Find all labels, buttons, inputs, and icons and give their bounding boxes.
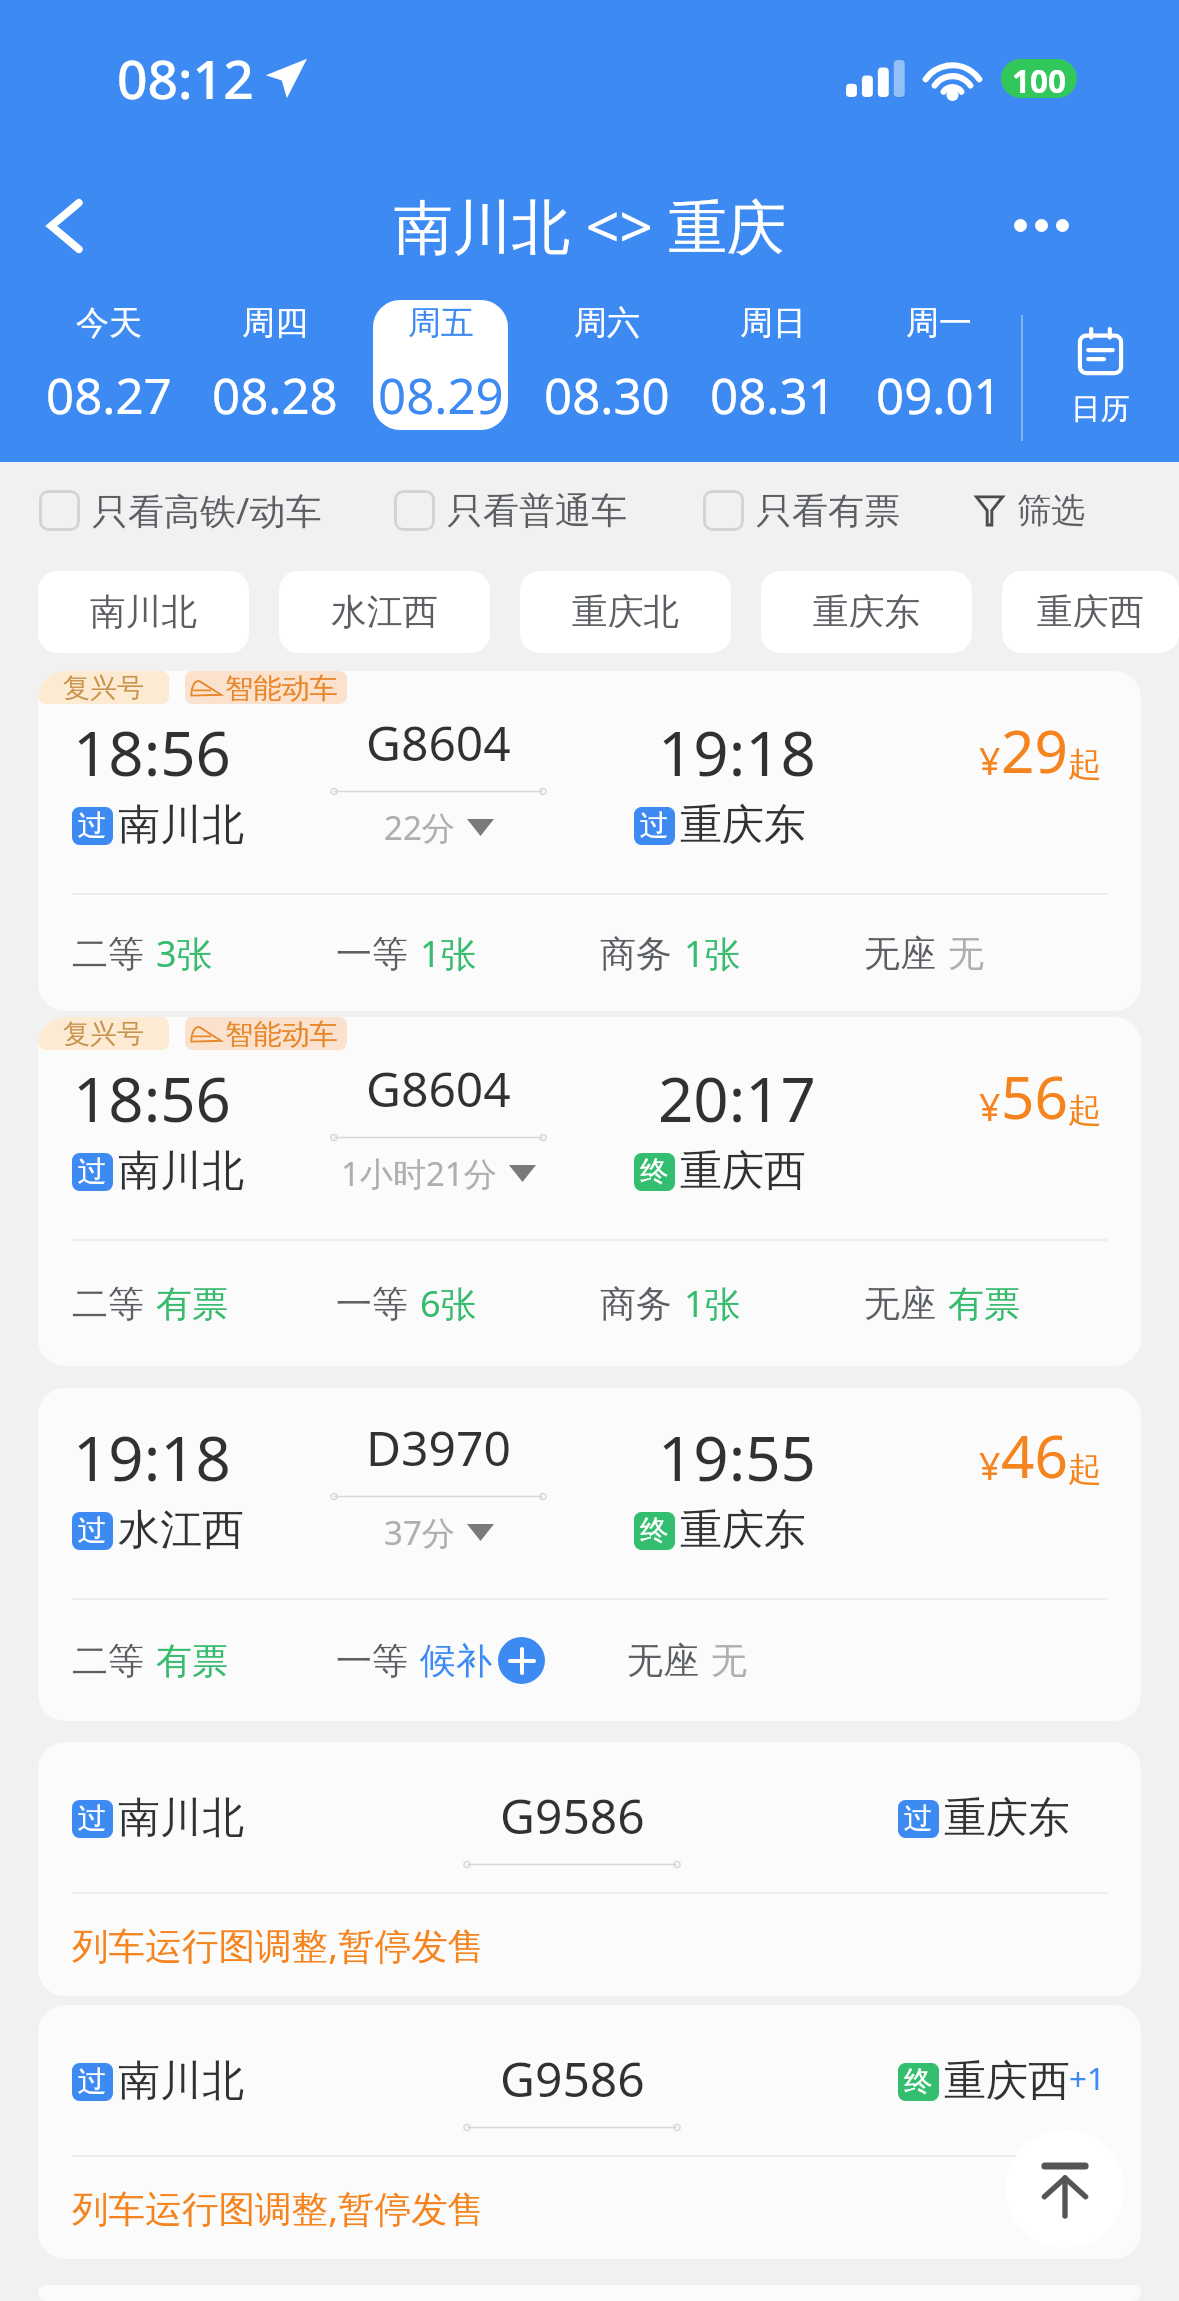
staticText: 复兴号 bbox=[63, 1017, 144, 1050]
staticText: 过 bbox=[78, 2064, 107, 2100]
staticText: 过 bbox=[904, 1801, 933, 1837]
staticText: 无 bbox=[948, 931, 984, 976]
staticText: 无座 bbox=[864, 1281, 936, 1326]
button[interactable]: 周五 bbox=[373, 300, 508, 430]
staticText: 周六 bbox=[574, 302, 640, 344]
button[interactable]: 周六 bbox=[539, 300, 674, 430]
staticText: 无座 bbox=[864, 931, 936, 976]
button[interactable]: 过 bbox=[38, 1742, 1141, 1996]
button[interactable]: 周一 bbox=[871, 300, 1006, 430]
staticText: 南川北 bbox=[118, 799, 244, 852]
staticText: 智能动车 bbox=[225, 1017, 338, 1050]
staticText: 列车运行图调整,暂停发售 bbox=[72, 1920, 485, 1970]
staticText: 08.29 bbox=[378, 361, 504, 428]
staticText: 6张 bbox=[420, 1279, 477, 1328]
staticText: 无 bbox=[711, 1638, 747, 1683]
staticText: ¥ bbox=[979, 1440, 1001, 1491]
button[interactable]: More options bbox=[981, 165, 1101, 285]
staticText: 1张 bbox=[684, 929, 741, 978]
button[interactable]: 南川北 bbox=[38, 571, 249, 653]
button[interactable]: 重庆东 bbox=[761, 571, 972, 653]
staticText: 南川北 bbox=[90, 590, 198, 635]
staticText: 18:56 bbox=[73, 1056, 231, 1140]
button[interactable]: Calendar bbox=[1021, 294, 1179, 462]
staticText: 二等 bbox=[72, 1281, 144, 1326]
staticText: 19:18 bbox=[73, 1415, 231, 1499]
staticText: 08.27 bbox=[46, 361, 172, 428]
staticText: 18:56 bbox=[73, 710, 231, 794]
staticText: 重庆东 bbox=[680, 799, 806, 852]
staticText: 1张 bbox=[420, 929, 477, 978]
staticText: 重庆北 bbox=[572, 590, 680, 635]
staticText: ¥ bbox=[979, 1081, 1001, 1132]
button[interactable]: 只看普通车 bbox=[394, 488, 627, 533]
staticText: 重庆东 bbox=[813, 590, 921, 635]
button[interactable]: 周日 bbox=[705, 300, 840, 430]
button[interactable]: 水江西 bbox=[279, 571, 490, 653]
staticText: 重庆西 bbox=[680, 1145, 806, 1198]
staticText: 重庆东 bbox=[944, 1792, 1070, 1845]
staticText: 19:55 bbox=[658, 1415, 816, 1499]
staticText: 二等 bbox=[72, 931, 144, 976]
staticText: G9586 bbox=[500, 2046, 645, 2111]
button[interactable]: Back bbox=[3, 164, 126, 287]
staticText: +1 bbox=[1069, 2056, 1106, 2099]
staticText: 南川北 bbox=[118, 1145, 244, 1198]
staticText: 只看普通车 bbox=[447, 488, 627, 533]
staticText: 08.31 bbox=[710, 361, 836, 428]
staticText: 终 bbox=[904, 2064, 933, 2100]
staticText: 重庆西 bbox=[1037, 590, 1145, 635]
staticText: 商务 bbox=[600, 931, 672, 976]
staticText: 一等 bbox=[336, 931, 408, 976]
button[interactable]: 只看有票 bbox=[703, 488, 900, 533]
staticText: 过 bbox=[78, 1801, 107, 1837]
button[interactable]: 复兴号 bbox=[38, 671, 1141, 1011]
staticText: 周四 bbox=[242, 302, 308, 344]
button[interactable]: 筛选 bbox=[966, 483, 1095, 538]
staticText: 1小时21分 bbox=[341, 1151, 497, 1196]
button[interactable]: 重庆北 bbox=[520, 571, 731, 653]
staticText: 周一 bbox=[906, 302, 972, 344]
staticText: 1张 bbox=[684, 1279, 741, 1328]
staticText: 水江西 bbox=[331, 590, 439, 635]
staticText: 重庆西 bbox=[944, 2055, 1070, 2108]
staticText: 08:12 bbox=[117, 42, 254, 115]
button[interactable]: 只看高铁/动车 bbox=[39, 486, 322, 535]
staticText: 有票 bbox=[948, 1281, 1020, 1326]
staticText: 周五 bbox=[408, 302, 474, 344]
button[interactable]: 今天 bbox=[41, 300, 176, 430]
staticText: 起 bbox=[1068, 743, 1102, 786]
staticText: 起 bbox=[1068, 1448, 1102, 1491]
staticText: 起 bbox=[1068, 1089, 1102, 1132]
staticText: 过 bbox=[78, 1513, 107, 1549]
button[interactable]: 19:18 bbox=[38, 1388, 1141, 1721]
staticText: 22分 bbox=[384, 805, 455, 850]
staticText: G8604 bbox=[366, 1056, 511, 1121]
staticText: 09.01 bbox=[876, 361, 1002, 428]
staticText: 无座 bbox=[627, 1638, 699, 1683]
button[interactable]: 过 bbox=[38, 2005, 1141, 2259]
button[interactable]: 复兴号 bbox=[38, 1017, 1141, 1366]
staticText: 复兴号 bbox=[63, 671, 144, 704]
button[interactable]: 重庆西 bbox=[1002, 571, 1179, 653]
staticText: 只看高铁/动车 bbox=[92, 486, 322, 535]
staticText: ¥ bbox=[979, 735, 1001, 786]
button[interactable]: Back to top bbox=[1006, 2130, 1124, 2248]
staticText: 候补 bbox=[420, 1638, 492, 1683]
staticText: D3970 bbox=[366, 1415, 511, 1480]
staticText: 20:17 bbox=[658, 1056, 816, 1140]
staticText: 过 bbox=[78, 1154, 107, 1190]
staticText: 商务 bbox=[600, 1281, 672, 1326]
staticText: 南川北 bbox=[118, 1792, 244, 1845]
staticText: 37分 bbox=[384, 1510, 455, 1555]
staticText: G9586 bbox=[500, 1783, 645, 1848]
staticText: 3张 bbox=[156, 929, 213, 978]
staticText: 智能动车 bbox=[225, 671, 338, 704]
staticText: 有票 bbox=[156, 1281, 228, 1326]
staticText: 100 bbox=[1012, 59, 1067, 98]
staticText: 重庆东 bbox=[680, 1504, 806, 1557]
button[interactable]: 周四 bbox=[207, 300, 342, 430]
staticText: 二等 bbox=[72, 1638, 144, 1683]
staticText: 终 bbox=[640, 1513, 669, 1549]
staticText: 周日 bbox=[740, 302, 806, 344]
